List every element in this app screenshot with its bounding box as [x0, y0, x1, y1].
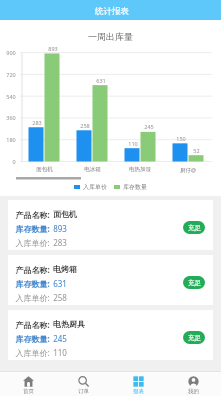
- staticText: 统计报表: [95, 6, 129, 17]
- staticText: 电热加湿: [129, 166, 151, 173]
- staticText: 我的: [188, 388, 199, 395]
- staticText: 首页: [23, 388, 34, 395]
- staticText: 245: [53, 333, 67, 344]
- staticText: 入库单价:: [15, 347, 50, 358]
- staticText: 订单: [78, 388, 89, 395]
- staticText: 产品名称:: [15, 209, 50, 220]
- staticText: 180: [6, 136, 16, 143]
- staticText: 报表: [133, 388, 144, 395]
- staticText: 库存数量:: [15, 223, 50, 234]
- button[interactable]: Home: [0, 374, 56, 395]
- staticText: 720: [6, 71, 16, 78]
- staticText: 电烤箱: [53, 264, 77, 274]
- staticText: 110: [128, 140, 138, 147]
- staticText: 893: [48, 45, 58, 52]
- staticText: 900: [6, 49, 16, 56]
- staticText: 充足: [188, 279, 201, 287]
- button[interactable]: Reports: [111, 374, 166, 395]
- staticText: 150: [176, 135, 186, 142]
- staticText: 52: [193, 147, 200, 154]
- button[interactable]: 充足: [183, 221, 205, 234]
- staticText: 库存数量:: [15, 278, 50, 289]
- staticText: 245: [144, 123, 154, 130]
- staticText: 入库单价:: [15, 237, 50, 248]
- staticText: 258: [80, 122, 90, 129]
- button[interactable]: 产品名称:: [8, 200, 213, 250]
- button[interactable]: Orders: [56, 374, 111, 395]
- staticText: 充足: [188, 224, 201, 232]
- staticText: 360: [6, 114, 16, 121]
- staticText: 电热厨具: [53, 319, 85, 329]
- staticText: 产品名称:: [15, 319, 50, 330]
- staticText: 充足: [188, 334, 201, 342]
- staticText: 面包机: [36, 166, 53, 173]
- staticText: 110: [53, 347, 67, 358]
- staticText: 库存数量:: [15, 333, 50, 344]
- staticText: 入库单价: [83, 183, 107, 191]
- staticText: 产品名称:: [15, 264, 50, 275]
- staticText: 入库单价:: [15, 292, 50, 303]
- staticText: 283: [53, 237, 67, 248]
- button[interactable]: 充足: [183, 276, 205, 289]
- staticText: 电冰箱: [84, 166, 101, 173]
- staticText: 631: [53, 278, 67, 289]
- staticText: 283: [32, 119, 42, 126]
- staticText: 0: [12, 158, 16, 165]
- button[interactable]: Profile: [166, 374, 221, 395]
- staticText: 库存数量: [123, 183, 147, 191]
- button[interactable]: 产品名称:: [8, 310, 213, 360]
- button[interactable]: 产品名称:: [8, 255, 213, 305]
- staticText: 540: [6, 93, 16, 100]
- staticText: 893: [53, 223, 67, 234]
- button[interactable]: 充足: [183, 331, 205, 344]
- staticText: 258: [53, 292, 67, 303]
- staticText: 一周出库量: [88, 31, 133, 42]
- staticText: 631: [96, 77, 106, 84]
- staticText: 厨仔@: [180, 166, 196, 174]
- staticText: 面包机: [53, 209, 77, 219]
